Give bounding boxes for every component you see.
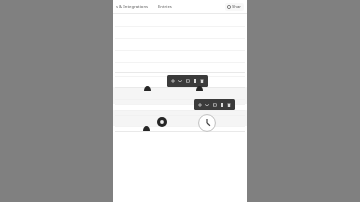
button[interactable]: Formatting toolbar action 5 (226, 102, 232, 108)
button[interactable] (113, 98, 247, 110)
button[interactable]: Selection handle (143, 126, 150, 131)
staticText: Shar (232, 4, 242, 10)
button[interactable]: Formatting toolbar action 4 (219, 102, 225, 108)
button[interactable]: Shar (225, 3, 244, 11)
staticText: s & Integrations (116, 4, 149, 10)
button[interactable]: Formatting toolbar action 1 (197, 102, 203, 108)
button[interactable]: Formatting toolbar action 1 (170, 78, 176, 84)
button[interactable] (113, 50, 247, 62)
button[interactable]: Selection handle (196, 86, 203, 91)
button[interactable]: Formatting toolbar action 4 (192, 78, 198, 84)
button[interactable] (113, 74, 247, 86)
button[interactable] (113, 62, 247, 74)
button[interactable]: Formatting toolbar action 3 (212, 102, 218, 108)
button[interactable]: Selection handle (144, 86, 151, 91)
button[interactable] (113, 26, 247, 38)
staticText: Entries (158, 4, 172, 10)
button[interactable] (113, 38, 247, 50)
button[interactable] (113, 86, 247, 98)
button[interactable]: Timer (198, 114, 216, 132)
button[interactable]: Entries (157, 4, 173, 10)
button[interactable]: Formatting toolbar action 2 (204, 102, 210, 108)
button[interactable] (113, 110, 247, 122)
button[interactable]: Formatting toolbar action 2 (177, 78, 183, 84)
button[interactable]: Handle (157, 117, 167, 127)
button[interactable]: Formatting toolbar action 5 (199, 78, 205, 84)
button[interactable]: Formatting toolbar action 3 (185, 78, 191, 84)
button[interactable]: s & Integrations (115, 4, 150, 10)
